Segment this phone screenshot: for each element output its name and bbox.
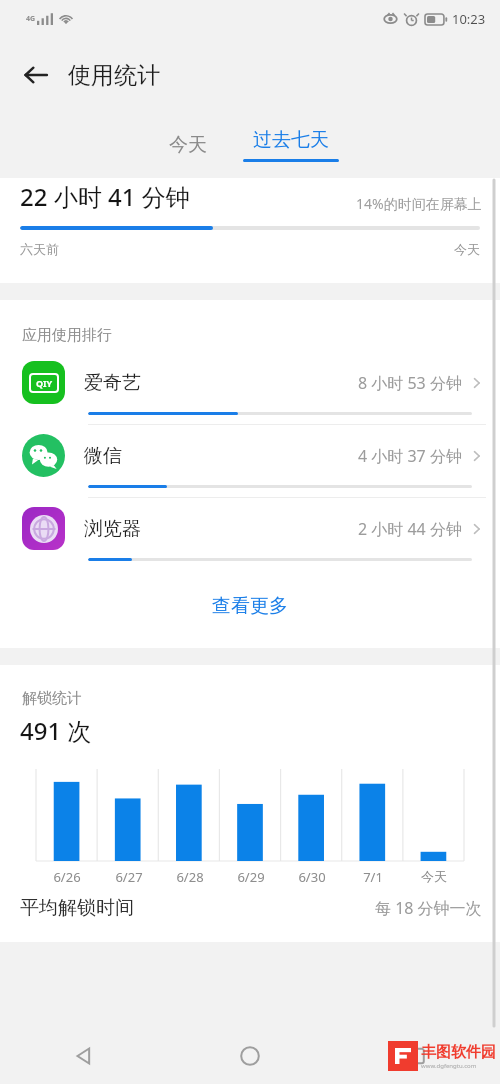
button[interactable]: QIY: [0, 361, 500, 434]
staticText: 每 18 分钟一次: [375, 897, 482, 919]
staticText: 22 小时 41 分钟: [20, 180, 190, 213]
button[interactable]: Back: [12, 51, 60, 99]
staticText: 491 次: [20, 714, 92, 747]
staticText: 查看更多: [212, 594, 288, 618]
staticText: 微信: [84, 444, 122, 468]
staticText: 10:23: [452, 10, 486, 28]
staticText: 6/30: [298, 868, 326, 886]
button[interactable]: Home: [166, 1028, 333, 1084]
staticText: 爱奇艺: [84, 371, 141, 395]
staticText: 六天前: [20, 241, 59, 257]
button[interactable]: 今天: [153, 125, 223, 165]
staticText: 8 小时 53 分钟: [358, 372, 462, 394]
button[interactable]: 微信: [0, 434, 500, 507]
staticText: 7/1: [363, 868, 383, 886]
staticText: 今天: [169, 133, 207, 157]
staticText: 2 小时 44 分钟: [358, 518, 462, 540]
staticText: 14%的时间在屏幕上: [356, 194, 482, 213]
staticText: 6/27: [115, 868, 143, 886]
staticText: 4 小时 37 分钟: [358, 445, 462, 467]
button[interactable]: 过去七天: [235, 128, 347, 162]
button[interactable]: 查看更多: [0, 584, 500, 628]
staticText: 使用统计: [68, 61, 160, 90]
staticText: 过去七天: [253, 128, 329, 152]
button[interactable]: Recents: [333, 1028, 500, 1084]
staticText: 平均解锁时间: [20, 896, 134, 920]
staticText: 解锁统计: [22, 689, 82, 708]
staticText: 6/26: [53, 868, 81, 886]
button[interactable]: Back: [0, 1028, 166, 1084]
staticText: www.dgfengtu.com: [421, 1062, 477, 1070]
button[interactable]: 浏览器: [0, 507, 500, 570]
staticText: 丰图软件园: [421, 1043, 496, 1062]
staticText: 今天: [421, 868, 447, 884]
staticText: 6/28: [176, 868, 204, 886]
staticText: QIY: [36, 377, 53, 389]
staticText: 今天: [454, 241, 480, 257]
staticText: 6/29: [237, 868, 265, 886]
staticText: 应用使用排行: [22, 326, 112, 345]
staticText: 浏览器: [84, 517, 141, 541]
staticText: 4G: [26, 14, 36, 24]
